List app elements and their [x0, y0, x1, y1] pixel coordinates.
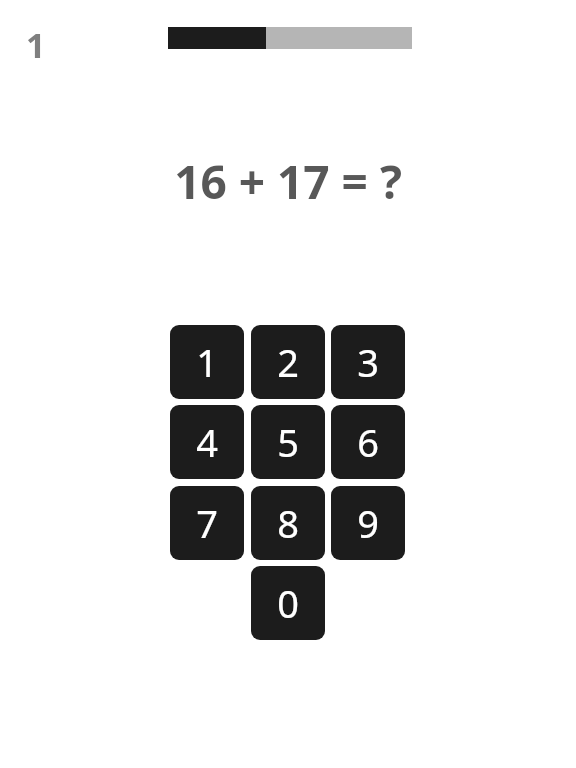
button[interactable]: Digit 7	[170, 486, 244, 560]
staticText: 0	[277, 577, 299, 629]
button[interactable]: Digit 5	[251, 405, 325, 479]
button[interactable]: Digit 0	[251, 566, 325, 640]
staticText: 2	[277, 336, 299, 388]
staticText: 8	[277, 497, 299, 549]
staticText: 3	[357, 336, 379, 388]
button[interactable]: Digit 6	[331, 405, 405, 479]
button[interactable]: Digit 8	[251, 486, 325, 560]
button[interactable]: Digit 3	[331, 325, 405, 399]
staticText: 4	[196, 416, 218, 468]
button[interactable]: Digit 9	[331, 486, 405, 560]
staticText: 1	[196, 336, 218, 388]
button[interactable]: Digit 1	[170, 325, 244, 399]
staticText: 5	[277, 416, 299, 468]
staticText: 6	[357, 416, 379, 468]
button[interactable]: Digit 2	[251, 325, 325, 399]
staticText: 7	[196, 497, 218, 549]
staticText: 16 + 17 = ?	[174, 150, 402, 213]
staticText: 1	[26, 22, 46, 64]
staticText: 9	[357, 497, 379, 549]
button[interactable]: Digit 4	[170, 405, 244, 479]
